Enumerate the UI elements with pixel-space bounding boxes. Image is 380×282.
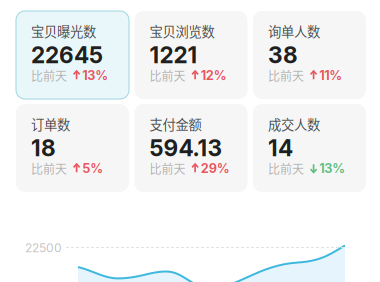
button[interactable]: 询单人数 <box>253 11 366 99</box>
staticText: 支付金额 <box>149 116 201 132</box>
staticText: 5% <box>82 162 103 175</box>
button[interactable]: 宝贝浏览数 <box>134 11 247 99</box>
staticText: 订单数 <box>31 116 70 132</box>
staticText: 13% <box>319 162 345 175</box>
staticText: 22645 <box>31 44 103 66</box>
staticText: 宝贝曝光数 <box>31 23 96 39</box>
button[interactable]: 支付金额 <box>134 104 247 192</box>
staticText: 594.13 <box>149 137 222 159</box>
staticText: 14 <box>268 137 293 159</box>
staticText: 12% <box>201 69 227 82</box>
staticText: 成交人数 <box>268 116 320 132</box>
button[interactable]: 订单数 <box>16 104 129 192</box>
staticText: 比前天 <box>268 68 304 82</box>
staticText: 宝贝浏览数 <box>149 23 214 39</box>
staticText: 38 <box>268 44 298 66</box>
staticText: 11% <box>319 69 342 82</box>
staticText: 22500 <box>25 242 62 254</box>
button[interactable]: 宝贝曝光数 <box>16 11 129 99</box>
staticText: 29% <box>201 162 230 175</box>
staticText: 13% <box>82 69 108 82</box>
staticText: 比前天 <box>31 68 67 82</box>
staticText: 比前天 <box>31 161 67 175</box>
staticText: 1221 <box>149 44 197 66</box>
button[interactable]: 成交人数 <box>253 104 366 192</box>
staticText: 比前天 <box>268 161 304 175</box>
staticText: 比前天 <box>149 68 185 82</box>
staticText: 18 <box>31 137 56 159</box>
staticText: 比前天 <box>149 161 185 175</box>
staticText: 询单人数 <box>268 23 320 39</box>
